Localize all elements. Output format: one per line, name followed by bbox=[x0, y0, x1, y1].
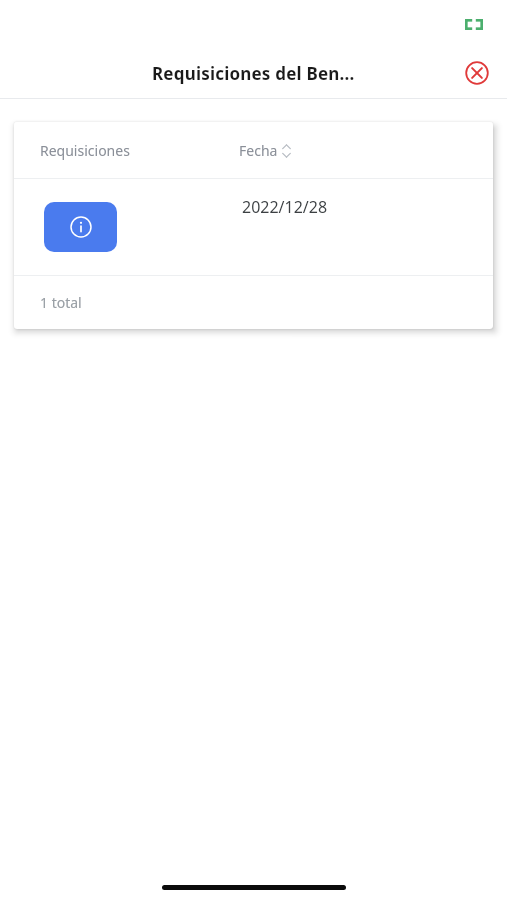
button[interactable]: Fecha bbox=[239, 141, 291, 160]
button[interactable]: Info bbox=[44, 202, 117, 252]
staticText: Requisiciones del Ben... bbox=[152, 62, 355, 85]
button[interactable]: Close bbox=[460, 56, 494, 90]
staticText: 1 total bbox=[40, 293, 82, 312]
button[interactable]: Cast screen bbox=[461, 11, 487, 37]
staticText: Requisiciones bbox=[40, 141, 130, 160]
staticText: Fecha bbox=[239, 141, 278, 160]
staticText: 2022/12/28 bbox=[242, 196, 328, 218]
